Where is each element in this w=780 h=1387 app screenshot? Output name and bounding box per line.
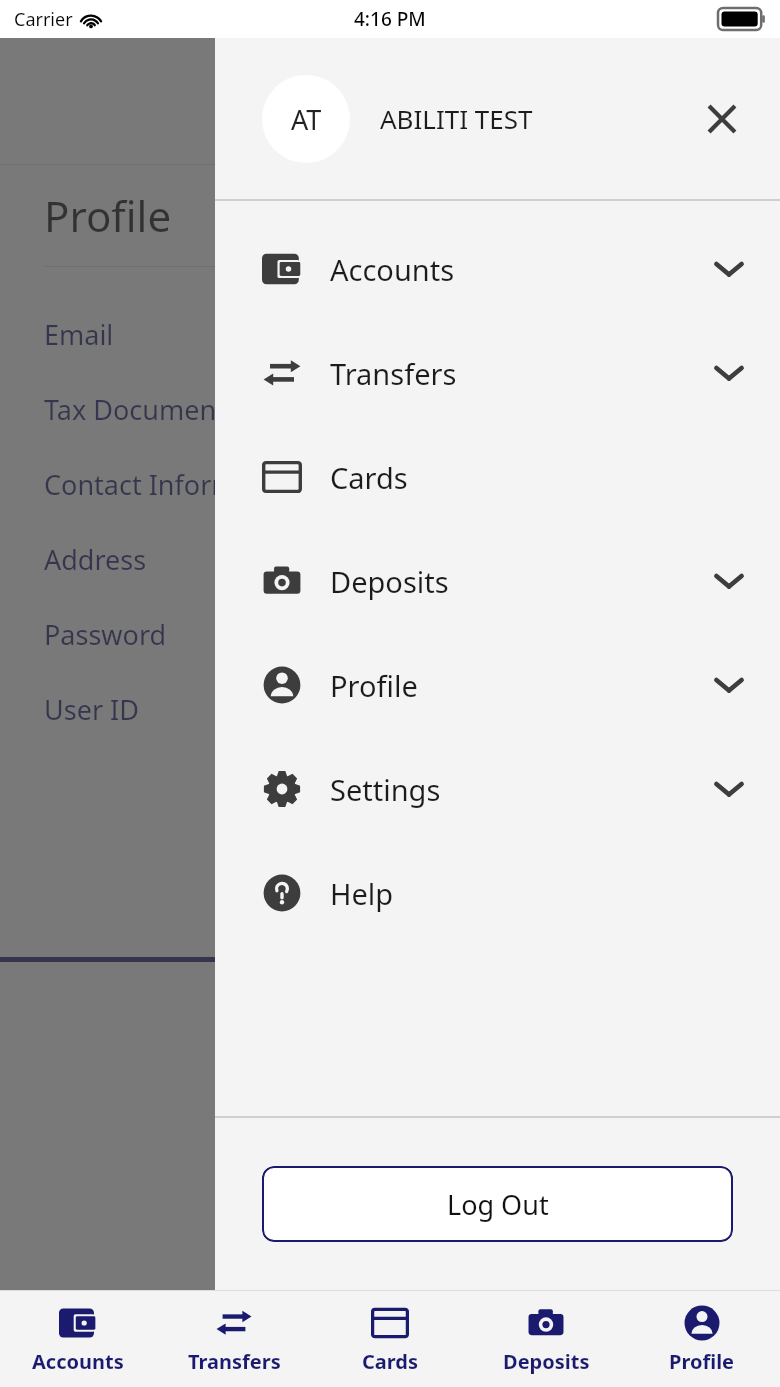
- button[interactable]: Close menu: [694, 91, 750, 147]
- staticText: Log Out: [447, 1186, 549, 1223]
- button[interactable]: Email: [0, 297, 780, 372]
- button[interactable]: Accounts: [0, 1291, 156, 1387]
- button[interactable]: Log Out: [262, 1166, 733, 1242]
- button[interactable]: Deposits: [468, 1291, 624, 1387]
- staticText: Contact Information: [44, 466, 302, 503]
- button[interactable]: Transfers: [156, 1291, 312, 1387]
- staticText: Accounts: [330, 250, 455, 289]
- staticText: Cards: [330, 458, 408, 497]
- staticText: Accounts: [32, 1348, 124, 1375]
- staticText: Settings: [330, 770, 441, 809]
- button[interactable]: Cards: [215, 425, 780, 529]
- staticText: Email: [44, 316, 114, 353]
- staticText: Help: [330, 874, 394, 913]
- staticText: AT: [291, 101, 322, 138]
- button[interactable]: Profile: [215, 633, 780, 737]
- button[interactable]: Address: [0, 522, 780, 597]
- button[interactable]: Deposits: [215, 529, 780, 633]
- staticText: Password: [44, 616, 167, 653]
- staticText: 4:16 PM: [354, 6, 426, 32]
- button[interactable]: Password: [0, 597, 780, 672]
- staticText: Profile: [669, 1348, 735, 1375]
- staticText: About Us: [0, 980, 756, 1014]
- staticText: Address: [44, 541, 147, 578]
- staticText: ABILITI TEST: [380, 101, 533, 136]
- staticText: Profile: [330, 666, 418, 705]
- staticText: Transfers: [188, 1348, 281, 1375]
- button[interactable]: Tax Documents: [0, 372, 780, 447]
- staticText: User ID: [44, 691, 139, 728]
- staticText: Transfers: [330, 354, 457, 393]
- button[interactable]: Contact Information: [0, 447, 780, 522]
- staticText: Deposits: [330, 562, 449, 601]
- staticText: Profile: [44, 187, 172, 244]
- button[interactable]: Accounts: [215, 217, 780, 321]
- staticText: Tax Documents: [44, 391, 239, 428]
- staticText: Copyright: [0, 1096, 756, 1130]
- staticText: Cards: [362, 1348, 419, 1375]
- button[interactable]: User ID: [0, 672, 780, 747]
- staticText: BANK: [365, 78, 462, 124]
- button[interactable]: Help: [215, 841, 780, 945]
- staticText: Deposits: [503, 1348, 590, 1375]
- button[interactable]: Transfers: [215, 321, 780, 425]
- staticText: Carrier: [14, 7, 73, 32]
- staticText: Federally insured: [0, 1130, 756, 1164]
- button[interactable]: Settings: [215, 737, 780, 841]
- button[interactable]: Cards: [312, 1291, 468, 1387]
- staticText: Contact Us: [0, 1032, 756, 1066]
- button[interactable]: Profile: [624, 1291, 780, 1387]
